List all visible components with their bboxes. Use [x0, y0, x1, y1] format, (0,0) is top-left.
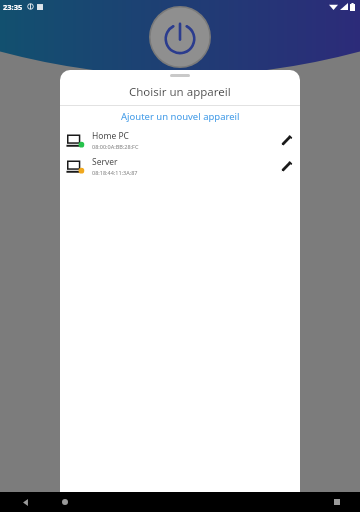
button[interactable]: Power	[149, 6, 211, 68]
staticText: Ajouter un nouvel appareil	[121, 110, 240, 123]
button[interactable]: Home	[54, 492, 76, 512]
button[interactable]: Home PC	[60, 127, 300, 153]
button[interactable]: Edit Server	[274, 154, 298, 178]
staticText: 08:00:0A:BB:28:FC	[92, 143, 139, 150]
staticText: 08:18:44:11:3A:87	[92, 169, 138, 176]
button[interactable]: Back	[14, 492, 36, 512]
staticText: Server	[92, 156, 118, 168]
staticText: 23:35	[3, 2, 23, 12]
button[interactable]: Edit Home PC	[274, 128, 298, 152]
button[interactable]: Server	[60, 153, 300, 179]
button[interactable]: Recents	[326, 492, 348, 512]
staticText: Choisir un appareil	[129, 84, 231, 100]
button[interactable]: Ajouter un nouvel appareil	[60, 106, 300, 127]
staticText: Home PC	[92, 130, 129, 142]
